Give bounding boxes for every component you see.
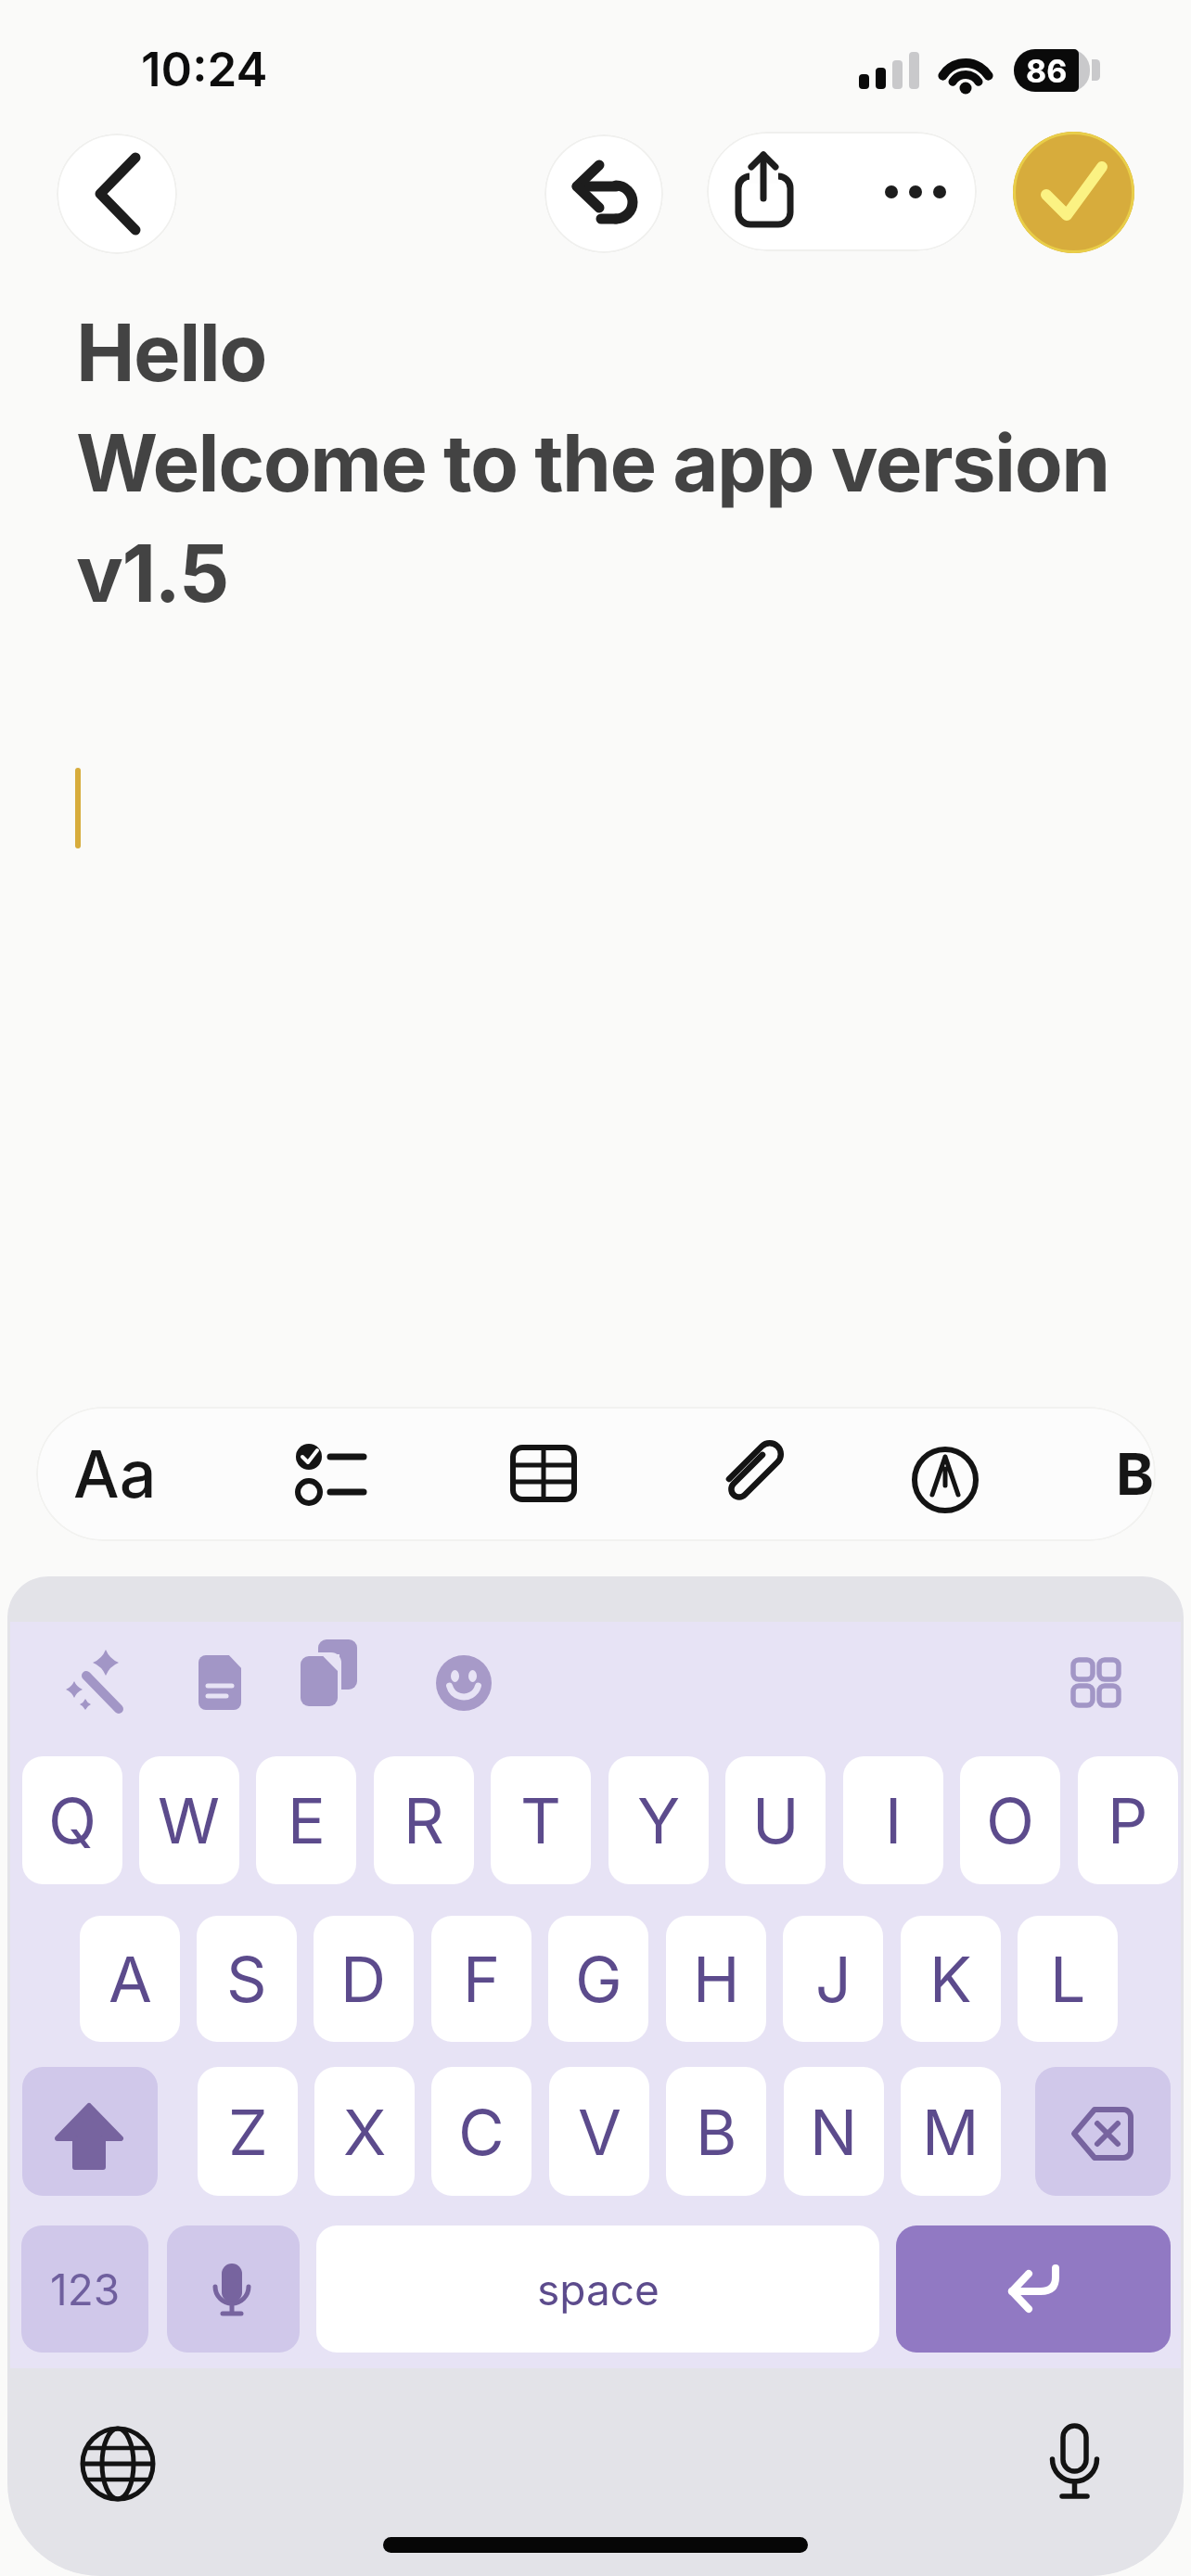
button[interactable]: [544, 134, 663, 253]
staticText: M: [922, 2094, 980, 2170]
staticText: O: [986, 1782, 1034, 1858]
staticText: U: [752, 1782, 800, 1858]
staticText: D: [340, 1941, 387, 2017]
button[interactable]: 123: [21, 2225, 148, 2353]
staticText: F: [463, 1941, 501, 2017]
staticText: H: [693, 1941, 740, 2017]
staticText: I: [885, 1782, 903, 1858]
button[interactable]: B: [666, 2067, 766, 2196]
button[interactable]: X: [314, 2067, 415, 2196]
staticText: R: [403, 1782, 444, 1858]
staticText: space: [537, 2264, 660, 2315]
button[interactable]: P: [1078, 1756, 1178, 1884]
staticText: N: [810, 2094, 858, 2170]
staticText: Hello Welcome to the app version v1.5: [76, 305, 1109, 621]
button[interactable]: L: [1018, 1916, 1118, 2042]
button[interactable]: I: [843, 1756, 943, 1884]
button[interactable]: [685, 1416, 890, 1532]
staticText: S: [226, 1941, 267, 2017]
button[interactable]: space: [316, 2225, 879, 2353]
button[interactable]: S: [197, 1916, 297, 2042]
button[interactable]: [1057, 1416, 1156, 1532]
staticText: Y: [637, 1782, 681, 1858]
button[interactable]: [167, 2225, 300, 2353]
button[interactable]: [472, 1416, 676, 1532]
staticText: V: [578, 2094, 621, 2170]
staticText: 123: [50, 2264, 121, 2315]
staticText: J: [815, 1941, 852, 2017]
button[interactable]: U: [725, 1756, 826, 1884]
button[interactable]: W: [139, 1756, 239, 1884]
button[interactable]: A: [80, 1916, 180, 2042]
staticText: C: [458, 2094, 505, 2170]
staticText: Aa: [73, 1435, 157, 1513]
button[interactable]: [896, 2225, 1171, 2353]
button[interactable]: Q: [22, 1756, 122, 1884]
button[interactable]: [57, 134, 177, 254]
button[interactable]: T: [491, 1756, 591, 1884]
button[interactable]: F: [431, 1916, 531, 2042]
button[interactable]: N: [784, 2067, 884, 2196]
button[interactable]: Z: [198, 2067, 298, 2196]
staticText: G: [575, 1941, 622, 2017]
button[interactable]: [1013, 132, 1134, 253]
button[interactable]: [707, 132, 855, 251]
staticText: 86: [1026, 52, 1068, 90]
staticText: A: [109, 1941, 152, 2017]
staticText: B: [1116, 1439, 1155, 1509]
button[interactable]: [55, 1416, 240, 1532]
button[interactable]: [890, 1416, 1047, 1532]
button[interactable]: V: [549, 2067, 649, 2196]
button[interactable]: D: [314, 1916, 414, 2042]
button[interactable]: E: [256, 1756, 356, 1884]
button[interactable]: C: [431, 2067, 531, 2196]
button[interactable]: Y: [608, 1756, 709, 1884]
staticText: E: [288, 1782, 326, 1858]
button[interactable]: M: [901, 2067, 1001, 2196]
button[interactable]: [259, 1416, 463, 1532]
button[interactable]: O: [960, 1756, 1060, 1884]
staticText: Q: [48, 1782, 96, 1858]
staticText: X: [343, 2094, 387, 2170]
staticText: Z: [228, 2094, 268, 2170]
staticText: B: [696, 2094, 737, 2170]
button[interactable]: J: [783, 1916, 883, 2042]
button[interactable]: R: [374, 1756, 474, 1884]
staticText: 10:24: [141, 41, 268, 98]
button[interactable]: K: [901, 1916, 1001, 2042]
button[interactable]: H: [666, 1916, 766, 2042]
staticText: K: [929, 1941, 972, 2017]
button[interactable]: [855, 132, 977, 251]
button[interactable]: [22, 2067, 158, 2196]
staticText: L: [1050, 1941, 1086, 2017]
button[interactable]: [1035, 2067, 1171, 2196]
button[interactable]: G: [548, 1916, 648, 2042]
staticText: W: [158, 1782, 221, 1858]
staticText: P: [1108, 1782, 1148, 1858]
staticText: T: [520, 1782, 561, 1858]
